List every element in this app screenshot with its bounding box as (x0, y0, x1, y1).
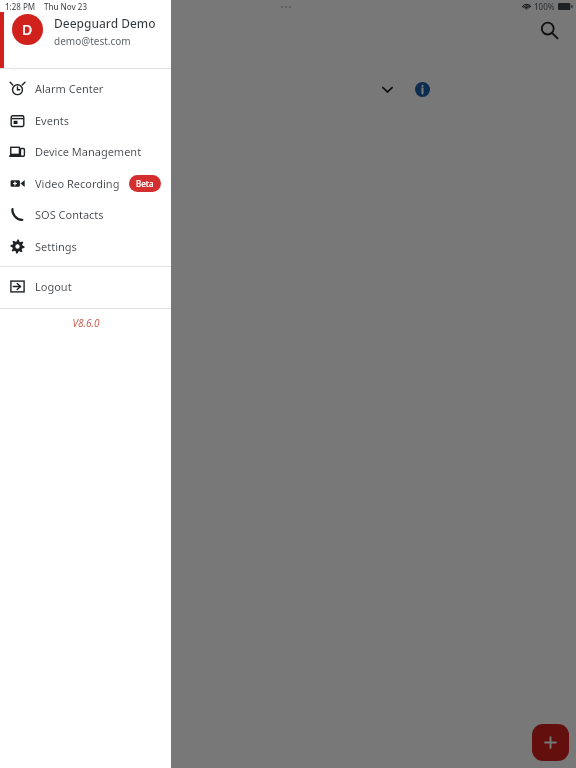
button[interactable]: Search (533, 14, 565, 46)
staticText: Video Recording (35, 176, 120, 191)
button[interactable]: Info (409, 76, 435, 102)
staticText: Alarm Center (35, 81, 104, 96)
staticText: Device Management (35, 144, 142, 159)
staticText: Thu Nov 23 (44, 1, 87, 12)
button[interactable]: Video Recording (0, 168, 171, 199)
button[interactable]: Add (532, 724, 569, 761)
button[interactable]: Alarm Center (0, 73, 171, 104)
button[interactable]: Settings (0, 231, 171, 262)
button[interactable]: Logout (0, 271, 171, 302)
button[interactable]: Device Management (0, 136, 171, 167)
staticText: demo@test.com (54, 34, 131, 48)
button[interactable]: D (0, 0, 171, 68)
staticText: Beta (136, 178, 154, 189)
staticText: Events (35, 113, 69, 128)
staticText: Settings (35, 239, 77, 254)
button[interactable]: SOS Contacts (0, 199, 171, 230)
staticText: 100% (534, 1, 555, 12)
button[interactable]: DG0420070010 (8, 58, 452, 120)
staticText: Logout (35, 279, 72, 294)
button[interactable]: Expand (374, 76, 400, 102)
staticText: DG0420070010 (24, 74, 103, 89)
staticText: 1:28 PM (5, 1, 36, 12)
staticText: SOS Contacts (35, 207, 104, 222)
button[interactable]: Events (0, 105, 171, 136)
staticText: D (22, 20, 33, 39)
staticText: V8.6.0 (72, 316, 100, 330)
staticText: Deepguard Demo (54, 15, 156, 31)
